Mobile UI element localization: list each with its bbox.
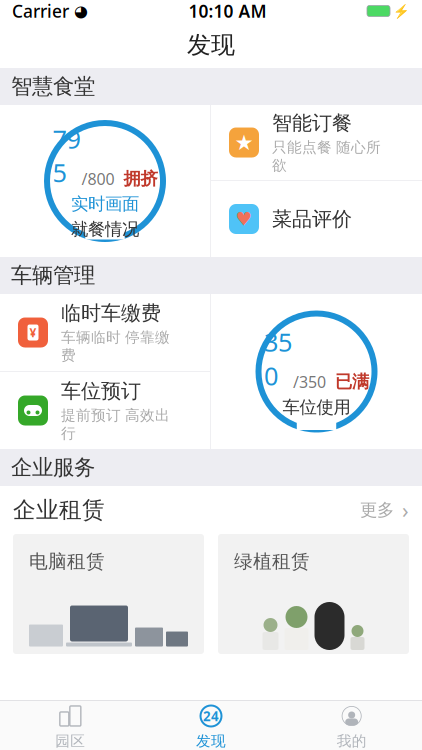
staticText: 企业租赁 <box>13 496 105 524</box>
button[interactable]: 企业租赁 <box>0 486 422 534</box>
staticText: ◕ <box>74 2 88 20</box>
button[interactable]: 我的 <box>281 697 422 750</box>
staticText: 车辆管理 <box>11 262 95 289</box>
staticText: Carrier <box>12 0 69 22</box>
staticText: 24 <box>203 707 219 725</box>
button[interactable]: 电脑租赁 <box>13 534 204 654</box>
staticText: 350 <box>264 325 292 392</box>
staticText: 车辆临时 停靠缴费 <box>61 328 170 364</box>
staticText: 拥挤 <box>123 168 157 189</box>
staticText: › <box>402 496 409 524</box>
button[interactable]: 24 <box>141 697 281 750</box>
button[interactable]: ♥ <box>211 181 422 257</box>
staticText: 我的 <box>337 732 367 750</box>
staticText: ★ <box>234 130 253 155</box>
button[interactable]: ★ <box>211 105 422 180</box>
button[interactable]: 绿植租赁 <box>218 534 409 654</box>
staticText: 智能订餐 <box>272 111 352 135</box>
staticText: 企业服务 <box>11 454 95 481</box>
staticText: 车位预订 <box>61 379 141 403</box>
staticText: 发现 <box>187 30 235 60</box>
staticText: 就餐情况 <box>71 219 139 240</box>
staticText: 智慧食堂 <box>11 73 95 100</box>
staticText: 车位使用 <box>282 396 350 418</box>
staticText: 提前预订 高效出行 <box>61 406 170 442</box>
staticText: 临时车缴费 <box>61 301 161 325</box>
staticText: 电脑租赁 <box>29 550 105 573</box>
staticText: 绿植租赁 <box>234 550 310 573</box>
staticText: /350 <box>293 371 326 392</box>
staticText: 795 <box>52 122 80 189</box>
staticText: ⚡ <box>393 3 410 19</box>
button[interactable]: ¥ <box>0 294 210 371</box>
staticText: 更多 <box>360 499 394 521</box>
staticText: 发现 <box>196 732 226 750</box>
staticText: 菜品评价 <box>272 207 352 231</box>
staticText: ¥ <box>29 324 36 340</box>
staticText: 园区 <box>55 732 85 750</box>
staticText: 实时画面 <box>71 193 139 215</box>
button[interactable]: 园区 <box>0 697 141 750</box>
staticText: 已满 <box>335 371 369 392</box>
staticText: 10:10 AM <box>188 0 266 22</box>
button[interactable]: 车位预订 <box>0 372 210 449</box>
staticText: 只能点餐 随心所欲 <box>272 138 381 174</box>
staticText: ♥ <box>235 208 252 230</box>
staticText: /800 <box>81 168 114 189</box>
